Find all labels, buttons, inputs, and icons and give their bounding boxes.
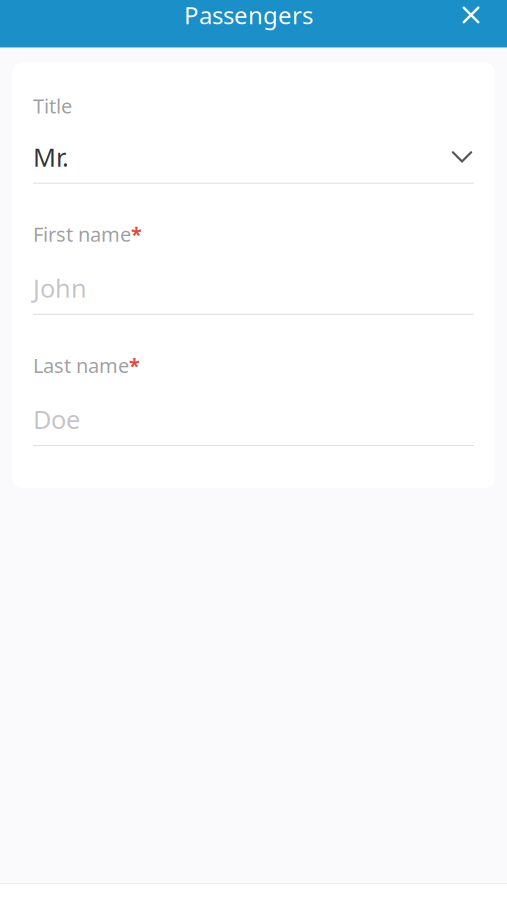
staticText: John [33, 271, 87, 305]
staticText: * [129, 352, 140, 378]
staticText: Passengers [184, 0, 313, 31]
button[interactable]: John [33, 271, 474, 315]
button[interactable]: Close [445, 0, 497, 41]
staticText: Mr. [33, 140, 69, 174]
staticText: Doe [33, 402, 80, 436]
staticText: First name [33, 221, 131, 247]
button[interactable]: Mr. [33, 140, 474, 184]
button[interactable]: Doe [33, 402, 474, 446]
staticText: Last name [33, 352, 129, 378]
staticText: * [131, 221, 142, 247]
staticText: Title [33, 92, 72, 119]
